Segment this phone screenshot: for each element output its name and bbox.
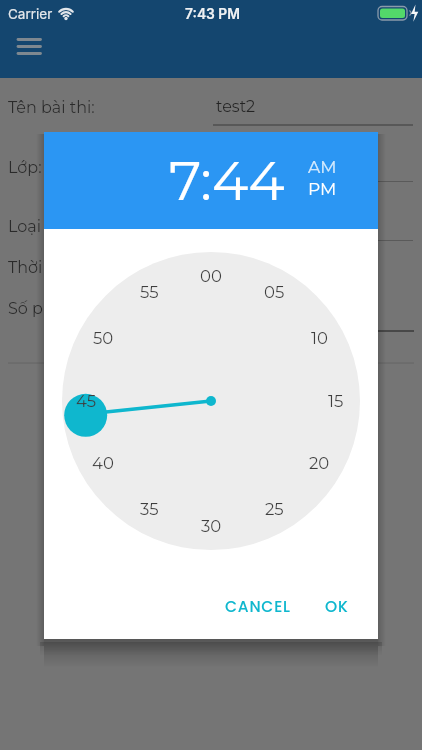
button[interactable]: CANCEL bbox=[213, 587, 303, 627]
staticText: OK bbox=[325, 596, 349, 618]
staticText: 7:43 PM bbox=[185, 6, 240, 23]
staticText: 7:44 bbox=[169, 147, 285, 214]
staticText: 55 bbox=[140, 282, 159, 302]
staticText: 30 bbox=[201, 516, 222, 536]
staticText: test2 bbox=[216, 97, 256, 117]
staticText: Thời gian bắt đầu: bbox=[8, 258, 152, 278]
staticText: 10 bbox=[311, 328, 328, 348]
staticText: 45 bbox=[76, 391, 97, 411]
staticText: Loại bài thi: bbox=[8, 217, 99, 237]
button[interactable] bbox=[62, 252, 360, 550]
staticText: Lớp: bbox=[8, 158, 42, 178]
staticText: 15 bbox=[328, 391, 344, 411]
staticText: 35 bbox=[140, 499, 159, 519]
staticText: 25 bbox=[265, 499, 284, 519]
button[interactable] bbox=[12, 32, 48, 62]
staticText: 05 bbox=[264, 282, 285, 302]
button[interactable]: AM bbox=[292, 156, 352, 178]
staticText: AM bbox=[308, 157, 337, 178]
button[interactable]: OK bbox=[307, 587, 367, 627]
staticText: 00 bbox=[200, 266, 222, 286]
staticText: Số phút làm bài: bbox=[8, 299, 139, 319]
staticText: Tên bài thi: bbox=[8, 98, 95, 118]
staticText: 20 bbox=[309, 453, 330, 473]
staticText: PM bbox=[308, 179, 337, 200]
staticText: 50 bbox=[93, 328, 114, 348]
staticText: 40 bbox=[92, 453, 114, 473]
button[interactable]: PM bbox=[292, 178, 352, 200]
staticText: CANCEL bbox=[225, 596, 291, 618]
staticText: Carrier bbox=[8, 6, 53, 22]
